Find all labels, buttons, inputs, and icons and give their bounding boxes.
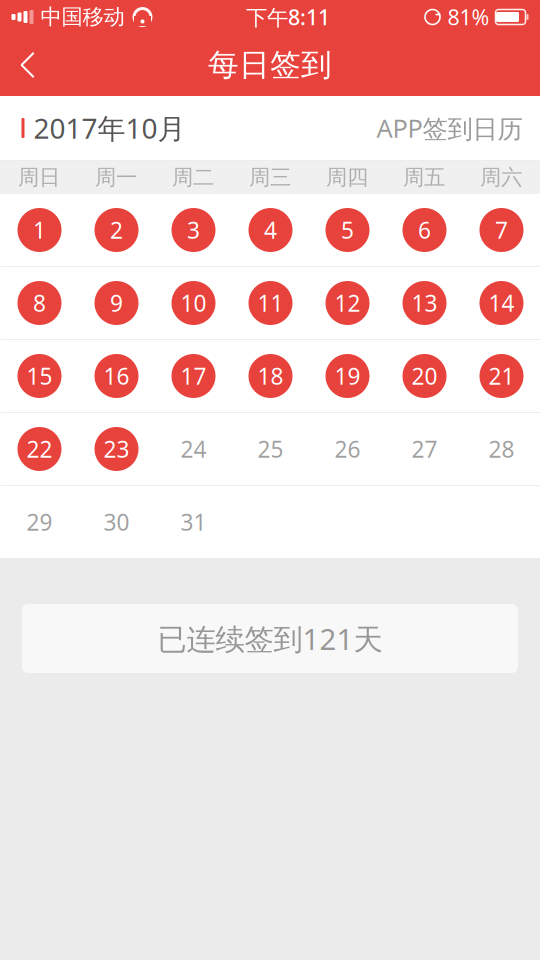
- button[interactable]: 1: [1, 194, 78, 266]
- staticText: 周六: [480, 164, 522, 191]
- staticText: 81%: [447, 3, 489, 31]
- staticText: 22: [26, 434, 52, 464]
- button[interactable]: 26: [309, 413, 386, 485]
- button[interactable]: 18: [232, 340, 309, 412]
- staticText: 11: [257, 288, 283, 318]
- button[interactable]: 27: [386, 413, 463, 485]
- button[interactable]: 29: [1, 486, 78, 558]
- staticText: 2017年10月: [33, 109, 185, 147]
- button[interactable]: 返回: [0, 34, 55, 96]
- button[interactable]: 13: [386, 267, 463, 339]
- button[interactable]: 8: [1, 267, 78, 339]
- staticText: 15: [26, 361, 52, 391]
- button[interactable]: 6: [386, 194, 463, 266]
- button[interactable]: 19: [309, 340, 386, 412]
- button[interactable]: 11: [232, 267, 309, 339]
- staticText: 周四: [326, 164, 368, 191]
- staticText: 20: [411, 361, 437, 391]
- staticText: APP签到日历: [376, 111, 522, 145]
- staticText: 18: [257, 361, 283, 391]
- staticText: 19: [334, 361, 360, 391]
- staticText: 25: [257, 434, 283, 464]
- staticText: 9: [110, 288, 123, 318]
- button[interactable]: 20: [386, 340, 463, 412]
- staticText: 周五: [403, 164, 445, 191]
- button[interactable]: 9: [78, 267, 155, 339]
- button[interactable]: 21: [463, 340, 540, 412]
- button[interactable]: 3: [155, 194, 232, 266]
- staticText: 31: [180, 507, 206, 537]
- staticText: 4: [264, 215, 277, 245]
- button[interactable]: 23: [78, 413, 155, 485]
- button[interactable]: 25: [232, 413, 309, 485]
- staticText: 下午8:11: [246, 3, 330, 31]
- staticText: 周一: [95, 164, 137, 191]
- button[interactable]: 2: [78, 194, 155, 266]
- staticText: 1: [33, 215, 46, 245]
- staticText: 5: [341, 215, 354, 245]
- button[interactable]: 15: [1, 340, 78, 412]
- button[interactable]: 10: [155, 267, 232, 339]
- staticText: 12: [334, 288, 360, 318]
- button[interactable]: 17: [155, 340, 232, 412]
- button[interactable]: 24: [155, 413, 232, 485]
- button[interactable]: 30: [78, 486, 155, 558]
- staticText: 21: [488, 361, 514, 391]
- staticText: 8: [33, 288, 46, 318]
- staticText: 30: [103, 507, 129, 537]
- staticText: 16: [103, 361, 129, 391]
- staticText: 14: [488, 288, 514, 318]
- staticText: 每日签到: [208, 46, 332, 84]
- staticText: 23: [103, 434, 129, 464]
- staticText: 周三: [249, 164, 291, 191]
- button[interactable]: 12: [309, 267, 386, 339]
- button[interactable]: 5: [309, 194, 386, 266]
- staticText: 2: [110, 215, 123, 245]
- staticText: 周二: [172, 164, 214, 191]
- staticText: 28: [488, 434, 514, 464]
- button[interactable]: 4: [232, 194, 309, 266]
- button[interactable]: 7: [463, 194, 540, 266]
- button[interactable]: 14: [463, 267, 540, 339]
- staticText: 10: [180, 288, 206, 318]
- staticText: 13: [411, 288, 437, 318]
- staticText: 27: [411, 434, 437, 464]
- staticText: 24: [180, 434, 206, 464]
- staticText: 中国移动: [40, 4, 124, 30]
- staticText: 26: [334, 434, 360, 464]
- staticText: 29: [26, 507, 52, 537]
- staticText: 7: [495, 215, 508, 245]
- button[interactable]: 已连续签到121天: [22, 604, 518, 673]
- button[interactable]: 28: [463, 413, 540, 485]
- staticText: 6: [418, 215, 431, 245]
- staticText: 周日: [18, 164, 60, 191]
- staticText: 已连续签到121天: [157, 619, 382, 658]
- button[interactable]: 16: [78, 340, 155, 412]
- staticText: 17: [180, 361, 206, 391]
- staticText: 3: [187, 215, 200, 245]
- button[interactable]: 31: [155, 486, 232, 558]
- button[interactable]: 22: [1, 413, 78, 485]
